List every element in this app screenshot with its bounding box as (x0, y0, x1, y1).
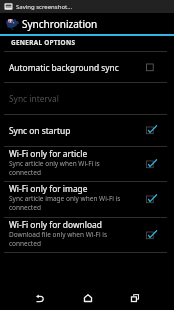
staticText: Sync on startup (9, 125, 71, 136)
button[interactable]: Sync interval (0, 83, 174, 114)
staticText: Saving screenshot... (16, 3, 73, 11)
staticText: Wi-Fi only for article (9, 148, 88, 159)
staticText: Automatic background sync (9, 62, 119, 73)
staticText: GENERAL OPTIONS (11, 38, 76, 47)
button[interactable]: Wi-Fi only for article (0, 147, 174, 181)
button[interactable]: Automatic background sync (0, 52, 174, 82)
staticText: Sync interval (9, 93, 59, 104)
staticText: Sync article image only when Wi-Fi is co… (9, 194, 122, 212)
staticText: Download file only when Wi-Fi is connect… (9, 230, 122, 248)
staticText: Synchronization (22, 17, 98, 31)
button[interactable]: Recent apps (120, 280, 150, 310)
staticText: Sync article only when Wi-Fi is connecte… (9, 159, 122, 177)
button[interactable]: Sync on startup (0, 115, 174, 146)
button[interactable]: Home (73, 280, 103, 310)
button[interactable]: Wi-Fi only for download (0, 218, 174, 252)
button[interactable]: Back (25, 280, 55, 310)
button[interactable]: Wi-Fi only for image (0, 182, 174, 217)
staticText: Wi-Fi only for download (9, 219, 102, 230)
staticText: Wi-Fi only for image (9, 183, 88, 194)
